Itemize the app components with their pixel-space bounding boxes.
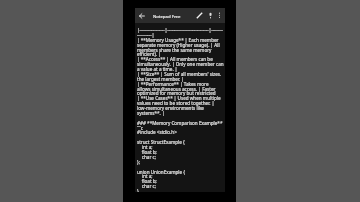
staticText: ```c (137, 125, 144, 131)
staticText: | **Performance** | Takes more memory bu… (137, 81, 224, 87)
button[interactable]: Back (136, 10, 147, 21)
staticText: int a; (137, 173, 153, 179)
staticText: | **Memory Usage** | Each member gets (137, 37, 224, 43)
staticText: low-memory environments like **embedded (137, 105, 224, 111)
staticText: } (137, 188, 139, 194)
button[interactable]: More options (214, 10, 225, 21)
staticText: simultaneously. | Only one member can st… (137, 61, 224, 67)
button[interactable]: Edit (194, 10, 205, 21)
staticText: }; (137, 159, 140, 165)
staticText: | **Size** | Sum of all members' sizes. … (137, 71, 224, 77)
staticText: struct StructExample { (137, 139, 185, 145)
staticText: values need to be stored together. | Use… (137, 100, 224, 106)
staticText: ----------| (137, 32, 155, 38)
staticText: #include <stdio.h> (137, 129, 177, 135)
staticText: char c; (137, 183, 156, 189)
staticText: | **Use Cases** | Used when multiple (137, 95, 221, 101)
staticText: efficient). | (137, 51, 161, 57)
staticText: optimized for memory but restricted acce… (137, 90, 224, 96)
staticText: | **Access** | All members can be access… (137, 56, 224, 62)
staticText: union UnionExample { (137, 169, 186, 175)
staticText: allows simultaneous access. | Faster and (137, 86, 224, 92)
staticText: members share the same memory (Memory (137, 47, 224, 53)
button[interactable]: Voice input (205, 10, 216, 21)
staticText: a value at a time. | (137, 66, 178, 72)
staticText: ### **Memory Comparison Example** (137, 120, 223, 126)
staticText: |-----------------|---------------------… (137, 27, 224, 33)
staticText: Notepad Free (153, 13, 181, 19)
staticText: separate memory (Higher usage). | All (137, 42, 220, 48)
staticText: char c; (137, 154, 156, 160)
staticText: the largest member. | (137, 76, 185, 82)
staticText: systems**. | (137, 110, 165, 116)
staticText: int a; (137, 144, 153, 150)
staticText: float b; (137, 149, 157, 155)
staticText: float b; (137, 178, 157, 184)
